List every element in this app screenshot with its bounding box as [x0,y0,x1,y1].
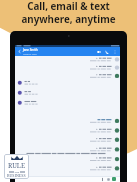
button[interactable]: Attach file [100,177,104,181]
button[interactable]: Back [15,45,120,182]
button[interactable]: Send [112,177,116,181]
staticText: anywhere, anytime [21,13,116,26]
button[interactable]: More options [112,49,118,55]
staticText: mighty cool [23,52,37,55]
staticText: RULE [8,161,25,170]
button[interactable]: Back [17,49,22,54]
button[interactable]: RULE [4,154,29,179]
button[interactable]: Video call [96,49,102,55]
staticText: Call, email & text [27,0,110,13]
button[interactable]: Call [104,49,110,55]
staticText: Jane Smith [23,48,38,52]
staticText: BUSINESS [7,173,26,177]
button[interactable]: Take photo [106,177,110,181]
staticText: THE [14,171,20,173]
